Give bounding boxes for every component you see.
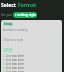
staticText: List row item — [6, 62, 25, 65]
staticText: List row item — [6, 70, 25, 72]
staticText: List row item — [6, 58, 25, 61]
button[interactable]: r writing style — [13, 12, 37, 18]
staticText: Essay — [4, 22, 13, 26]
staticText: For you — [1, 13, 12, 17]
button[interactable] — [3, 48, 13, 52]
staticText: r writing style — [15, 13, 36, 17]
staticText: List row item — [6, 66, 25, 69]
staticText: Academic writing — [3, 28, 28, 32]
staticText: Choose a style — [3, 38, 24, 42]
button[interactable]: Essay — [3, 22, 13, 26]
staticText: List row item — [6, 54, 25, 57]
staticText: Format — [18, 2, 37, 9]
staticText: Select — [1, 2, 18, 9]
